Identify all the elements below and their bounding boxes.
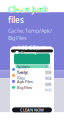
staticText: 208 MB: [45, 70, 52, 81]
staticText: Clean Junk files: [8, 4, 49, 25]
staticText: Cleaning...: [20, 50, 38, 55]
staticText: CLEAN NOW: [20, 107, 44, 113]
staticText: Big Files: [17, 85, 32, 90]
staticText: Apk Files: [17, 79, 33, 84]
staticText: System Cache: [17, 64, 30, 75]
staticText: 1.02 GB Junk Found: [17, 44, 46, 58]
staticText: Temp Files: [17, 70, 27, 81]
staticText: Cache, Temp/Apk/Big Files: [8, 27, 52, 41]
button[interactable]: CLEAN NOW: [12, 107, 52, 112]
staticText: 412 MB: [45, 64, 52, 75]
staticText: 164 MB: [45, 76, 52, 87]
staticText: 245 MB: [45, 82, 52, 93]
